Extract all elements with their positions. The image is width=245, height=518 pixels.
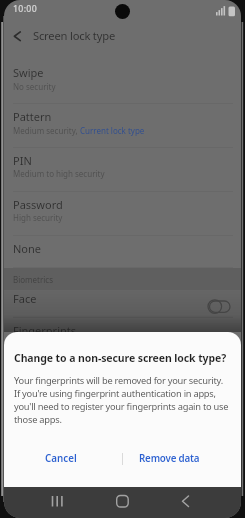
staticText: 10:00 bbox=[13, 3, 38, 15]
staticText: PIN bbox=[13, 153, 32, 168]
staticText: Swipe bbox=[13, 65, 44, 80]
button[interactable] bbox=[4, 290, 241, 318]
button[interactable] bbox=[40, 487, 80, 518]
staticText: No security bbox=[13, 81, 56, 92]
staticText: Medium to high security bbox=[13, 168, 105, 179]
staticText: Face bbox=[13, 291, 37, 306]
button[interactable] bbox=[4, 59, 241, 103]
button[interactable] bbox=[4, 103, 241, 147]
button[interactable] bbox=[4, 235, 241, 268]
staticText: Change to a non-secure screen lock type? bbox=[14, 351, 227, 365]
staticText: Password bbox=[13, 197, 63, 212]
staticText: Medium security, bbox=[13, 125, 80, 136]
staticText: Current lock type bbox=[80, 125, 145, 136]
button[interactable]: Cancel bbox=[21, 447, 101, 469]
button[interactable] bbox=[4, 147, 241, 191]
staticText: Screen lock type bbox=[33, 28, 115, 43]
button[interactable] bbox=[102, 487, 142, 518]
staticText: Your fingerprints will be removed for yo… bbox=[14, 374, 229, 426]
staticText: Cancel bbox=[45, 452, 77, 465]
button[interactable]: Remove data bbox=[119, 447, 219, 469]
button[interactable] bbox=[4, 22, 54, 50]
staticText: None bbox=[13, 241, 42, 256]
staticText: Remove data bbox=[139, 452, 200, 465]
staticText: Fingerprints bbox=[13, 323, 77, 338]
staticText: Pattern bbox=[13, 109, 52, 124]
staticText: High security bbox=[13, 212, 63, 223]
button[interactable] bbox=[4, 191, 241, 235]
button[interactable] bbox=[164, 487, 204, 518]
staticText: Biometrics bbox=[13, 274, 54, 285]
